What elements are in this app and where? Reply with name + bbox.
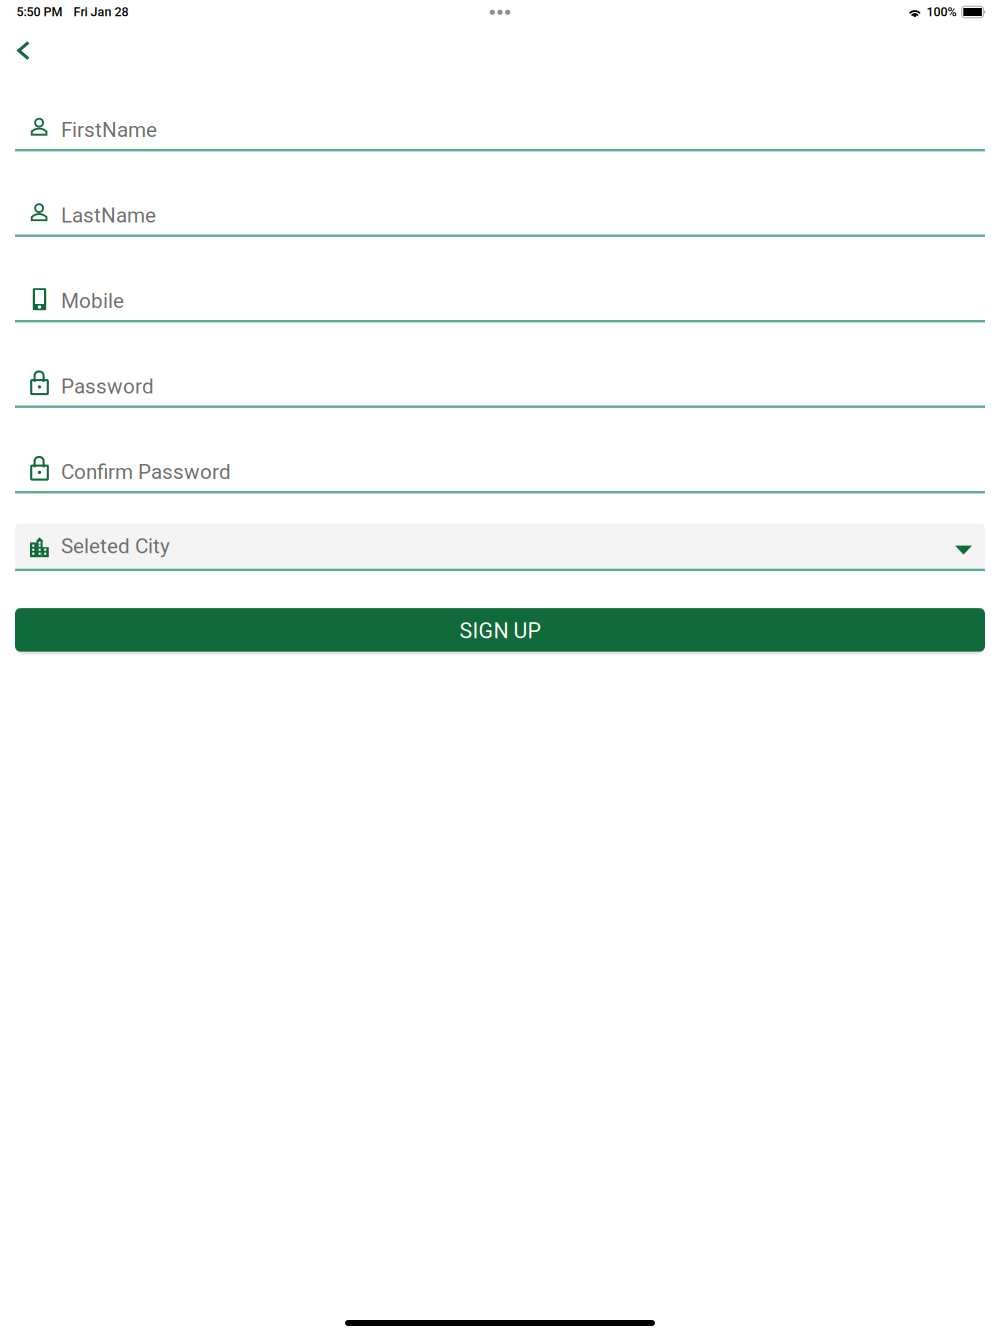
button[interactable]: Confirm Password: [15, 436, 985, 493]
button[interactable]: Back: [0, 23, 44, 65]
staticText: 5:50 PM: [16, 5, 62, 19]
staticText: Fri Jan 28: [73, 5, 128, 19]
staticText: LastName: [61, 203, 156, 228]
button[interactable]: SIGN UP: [15, 608, 985, 652]
staticText: 100%: [927, 5, 957, 19]
button[interactable]: LastName: [15, 179, 985, 237]
button[interactable]: FirstName: [15, 94, 985, 151]
staticText: SIGN UP: [459, 618, 540, 643]
staticText: Password: [61, 374, 154, 399]
staticText: FirstName: [61, 118, 157, 142]
staticText: Confirm Password: [61, 460, 231, 484]
staticText: Mobile: [61, 289, 124, 313]
button[interactable]: Seleted City: [15, 523, 985, 571]
staticText: Seleted City: [61, 534, 170, 558]
button[interactable]: Mobile: [15, 265, 985, 322]
button[interactable]: Password: [15, 350, 985, 408]
